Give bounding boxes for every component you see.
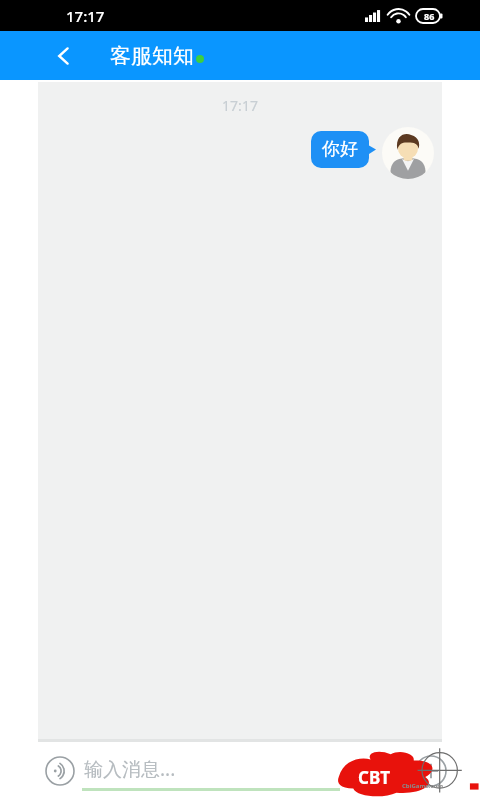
staticText: 17:17 (38, 96, 442, 115)
button[interactable]: More options (410, 750, 452, 792)
button[interactable]: Voice input (40, 751, 80, 791)
staticText: CbiGame.com (402, 782, 444, 790)
staticText: 输入消息... (84, 756, 176, 782)
staticText: 17:17 (66, 6, 105, 26)
button[interactable]: 你好 (311, 131, 376, 168)
staticText: 客服知知 (110, 43, 194, 69)
staticText: 你好 (322, 138, 358, 161)
staticText: 86 (424, 10, 435, 22)
button[interactable]: Avatar (382, 127, 434, 179)
staticText: CBT (358, 766, 391, 789)
button[interactable]: Back (44, 36, 84, 76)
